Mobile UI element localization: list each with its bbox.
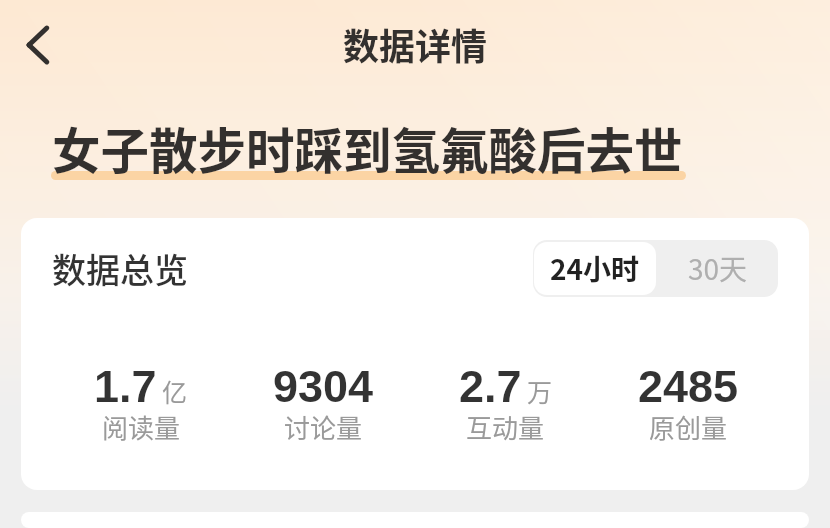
staticText: 9304 [273, 361, 374, 411]
staticText: 2485 [638, 361, 739, 411]
button[interactable]: 30天 [657, 240, 778, 297]
button[interactable]: 1.7 [50, 361, 232, 449]
staticText: 互动量 [466, 408, 545, 446]
staticText: 数据详情 [343, 18, 488, 70]
staticText: 万 [527, 373, 553, 409]
button[interactable]: Back [8, 15, 68, 75]
staticText: 阅读量 [102, 408, 181, 446]
button[interactable]: 2.7 [414, 361, 597, 449]
button[interactable]: 24小时 [534, 242, 656, 295]
staticText: 女子散步时踩到氢氟酸后去世 [52, 113, 683, 183]
staticText: 亿 [162, 373, 188, 409]
staticText: 2.7 [459, 361, 522, 411]
button[interactable]: 2485 [597, 361, 780, 449]
staticText: 讨论量 [284, 408, 363, 446]
staticText: 原创量 [649, 408, 728, 446]
staticText: 数据总览 [52, 244, 188, 293]
staticText: 30天 [688, 248, 748, 289]
button[interactable]: 9304 [232, 361, 414, 449]
staticText: 24小时 [550, 248, 640, 289]
staticText: 1.7 [94, 361, 157, 411]
